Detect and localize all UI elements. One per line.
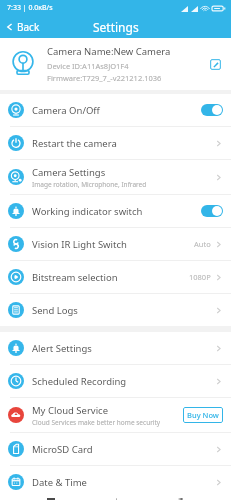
staticText: Device ID:A11As8JO1F4 (47, 61, 129, 71)
button[interactable]: Camera Settings (0, 160, 231, 194)
staticText: Working indicator switch (32, 205, 143, 218)
button[interactable]: Toggle (201, 205, 223, 217)
staticText: Vision IR Light Switch (32, 238, 127, 251)
button[interactable]: Back (167, 498, 193, 500)
button[interactable]: Buy Now (183, 407, 223, 423)
button[interactable]: Restart the camera (0, 127, 231, 159)
button[interactable]: Back (0, 17, 48, 37)
staticText: Bitstream selection (32, 271, 118, 284)
staticText: Date & Time (32, 476, 87, 489)
button[interactable]: Camera On/Off (0, 94, 231, 126)
staticText: Alert Settings (32, 342, 92, 355)
staticText: 7:33 | 0.0кB/s (7, 3, 53, 13)
staticText: Image rotation, Microphone, Infrared (32, 180, 147, 189)
staticText: Camera Settings (32, 166, 106, 179)
staticText: Camera Name:New Camera (47, 45, 171, 58)
staticText: 1080P (189, 272, 211, 282)
staticText: MicroSD Card (32, 443, 93, 456)
button[interactable]: Date & Time (0, 466, 231, 498)
button[interactable]: Camera Name:New Camera (0, 38, 231, 90)
button[interactable]: Vision IR Light Switch (0, 228, 231, 260)
staticText: Auto (194, 239, 211, 249)
staticText: Send Logs (32, 304, 78, 317)
button[interactable]: Toggle (201, 104, 223, 116)
button[interactable]: MicroSD Card (0, 433, 231, 465)
staticText: Firmware:T729_7_-v221212.1036 (47, 73, 162, 83)
staticText: Scheduled Recording (32, 375, 127, 388)
staticText: Cloud Services make better home security (32, 418, 161, 427)
button[interactable]: Working indicator switch (0, 195, 231, 227)
button[interactable]: Home (103, 498, 129, 500)
staticText: Restart the camera (32, 137, 117, 150)
button[interactable]: Send Logs (0, 294, 231, 326)
button[interactable]: My Cloud Service (0, 398, 231, 432)
button[interactable]: Bitstream selection (0, 261, 231, 293)
staticText: Settings (93, 19, 139, 35)
button[interactable]: Alert Settings (0, 332, 231, 364)
button[interactable]: Recent apps (38, 498, 64, 500)
staticText: Back (17, 20, 40, 34)
staticText: Camera On/Off (32, 104, 100, 117)
button[interactable]: Edit camera name (207, 56, 223, 72)
staticText: Buy Now (187, 410, 219, 420)
button[interactable]: Scheduled Recording (0, 365, 231, 397)
staticText: My Cloud Service (32, 404, 109, 417)
